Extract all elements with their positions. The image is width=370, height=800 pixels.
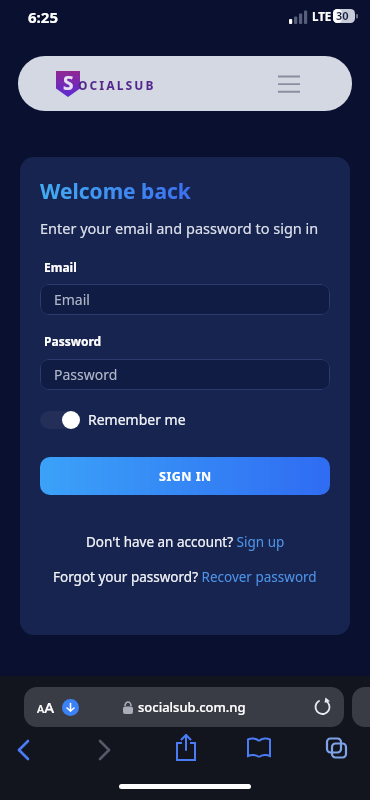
staticText: AA — [37, 697, 55, 717]
button[interactable]: Don't have an account? Sign up — [40, 533, 330, 551]
button[interactable] — [92, 739, 114, 761]
button[interactable]: Forgot your password? Recover password — [40, 568, 330, 586]
staticText: Email — [54, 290, 90, 309]
staticText: LTE — [312, 9, 332, 25]
staticText: S — [63, 70, 74, 96]
staticText: OCIALSUB — [78, 77, 156, 93]
button[interactable]: Email — [40, 284, 330, 315]
button[interactable]: SIGN IN — [40, 457, 330, 495]
button[interactable] — [324, 737, 348, 761]
button[interactable] — [277, 75, 301, 93]
staticText: Password — [54, 365, 118, 384]
staticText: Don't have an account? Sign up — [86, 533, 285, 551]
button[interactable] — [246, 737, 272, 759]
button[interactable]: AA — [24, 687, 344, 727]
staticText: Forgot your password? Recover password — [53, 568, 317, 586]
button[interactable] — [40, 410, 80, 429]
button[interactable] — [313, 697, 333, 717]
button[interactable] — [14, 739, 36, 761]
staticText: Password — [44, 333, 102, 349]
staticText: Welcome back — [40, 177, 191, 206]
staticText: SIGN IN — [159, 468, 212, 485]
button[interactable] — [174, 734, 198, 762]
staticText: 6:25 — [28, 7, 58, 27]
staticText: Email — [44, 259, 77, 275]
staticText: Remember me — [88, 410, 186, 429]
button[interactable]: Password — [40, 359, 330, 390]
staticText: socialsub.com.ng — [138, 698, 246, 716]
staticText: 30 — [336, 8, 349, 23]
staticText: Enter your email and password to sign in — [40, 218, 319, 238]
